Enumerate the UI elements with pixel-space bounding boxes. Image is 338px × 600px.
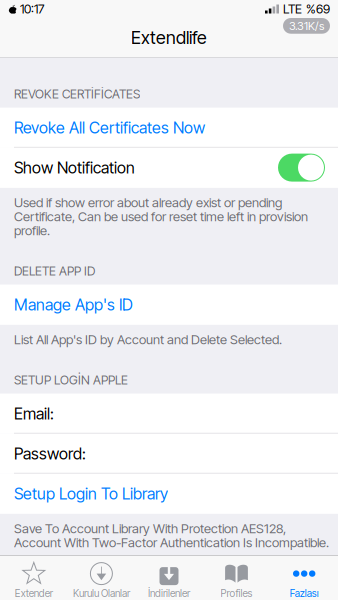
- button[interactable]: Show Notification: [278, 154, 325, 182]
- staticText: Email:: [14, 404, 54, 423]
- staticText: 10:17: [20, 1, 44, 17]
- button[interactable]: İndirilenler: [135, 556, 203, 600]
- staticText: Show Notification: [14, 158, 135, 177]
- button[interactable]: Password:: [0, 434, 338, 474]
- staticText: Revoke All Certificates Now: [14, 118, 205, 137]
- staticText: LTE: [283, 1, 302, 17]
- staticText: %69: [306, 1, 330, 17]
- staticText: Manage App's ID: [14, 295, 133, 314]
- button[interactable]: Email:: [0, 394, 338, 434]
- button[interactable]: Revoke All Certificates Now: [0, 108, 338, 148]
- staticText: REVOKE CERTİFİCATES: [14, 87, 140, 102]
- staticText: 3.31K/s: [289, 19, 324, 33]
- button[interactable]: Fazlası: [270, 556, 338, 600]
- staticText: Extendlife: [131, 27, 207, 48]
- staticText: Extender: [15, 587, 53, 599]
- staticText: Profiles: [221, 587, 253, 599]
- staticText: Save To Account Library With Protection …: [14, 522, 329, 550]
- button[interactable]: Kurulu Olanlar: [68, 556, 135, 600]
- staticText: Used if show error about already exist o…: [14, 196, 308, 238]
- staticText: İndirilenler: [148, 587, 190, 599]
- staticText: List All App's ID by Account and Delete …: [14, 333, 282, 347]
- staticText: SETUP LOGİN APPLE: [14, 373, 128, 388]
- button[interactable]: Profiles: [203, 556, 270, 600]
- button[interactable]: Extender: [0, 556, 68, 600]
- button[interactable]: Manage App's ID: [0, 285, 338, 325]
- button[interactable]: Setup Login To Library: [0, 474, 338, 514]
- staticText: Password:: [14, 444, 86, 463]
- staticText: DELETE APP ID: [14, 264, 95, 279]
- staticText: Kurulu Olanlar: [73, 587, 130, 599]
- staticText: Setup Login To Library: [14, 484, 168, 503]
- staticText: Fazlası: [290, 587, 319, 599]
